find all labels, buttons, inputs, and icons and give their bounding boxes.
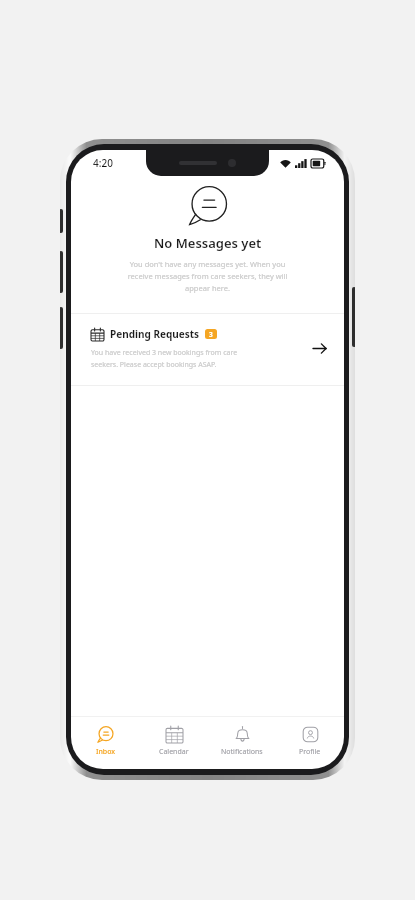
button[interactable]: Notifications [208, 717, 276, 769]
staticText: You don't have any messages yet. When yo… [123, 259, 292, 294]
staticText: Notifications [221, 747, 263, 757]
staticText: No Messages yet [154, 234, 262, 252]
button[interactable]: Inbox [71, 717, 140, 769]
button[interactable]: Profile [276, 717, 344, 769]
button[interactable]: Calendar [140, 717, 208, 769]
button[interactable]: Pending Requests [71, 314, 344, 385]
button[interactable]: Open pending requests [306, 335, 332, 361]
staticText: Calendar [159, 747, 189, 757]
staticText: Profile [299, 747, 321, 757]
staticText: Inbox [96, 747, 116, 757]
staticText: 4:20 [93, 156, 113, 170]
staticText: Pending Requests [110, 327, 200, 341]
staticText: You have received 3 new bookings from ca… [91, 348, 259, 369]
staticText: 3 [209, 330, 213, 339]
